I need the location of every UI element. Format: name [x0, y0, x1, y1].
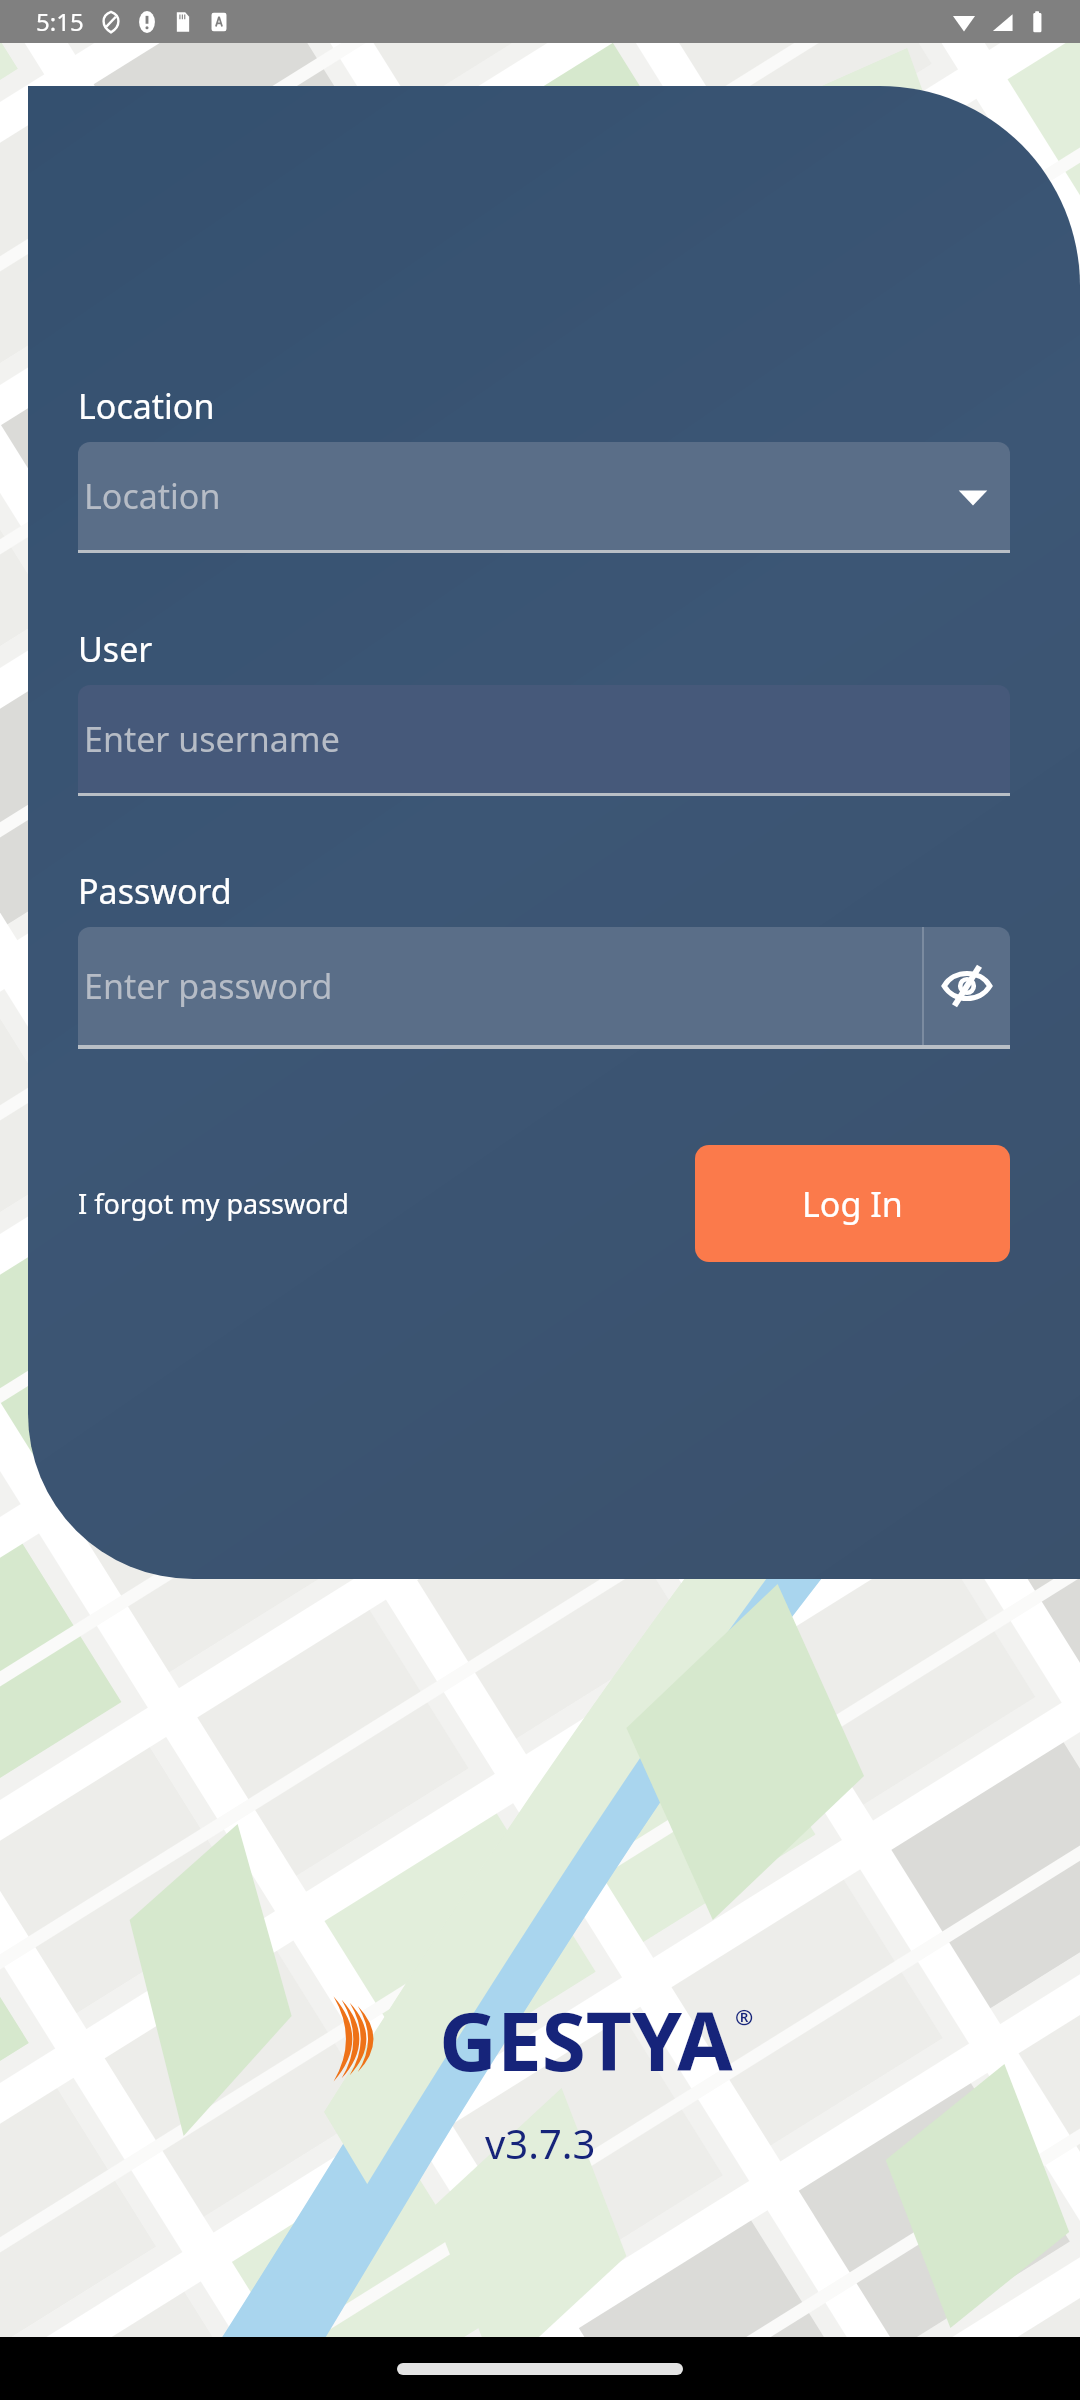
other: Open location list [956, 479, 990, 513]
staticText: v3.7.3 [485, 2116, 596, 2170]
staticText: 5:15 [36, 5, 84, 38]
button[interactable]: Show password [924, 927, 1010, 1045]
staticText: User [78, 626, 153, 672]
staticText: Location [78, 383, 215, 429]
button[interactable]: Enter username [78, 685, 1010, 796]
button[interactable]: Log In [695, 1145, 1010, 1262]
staticText: Enter password [84, 963, 333, 1009]
staticText: Log In [802, 1181, 903, 1227]
staticText: Location [84, 473, 221, 519]
staticText: I forgot my password [78, 1185, 349, 1222]
staticText: Password [78, 868, 232, 914]
staticText: ® [735, 2001, 754, 2031]
staticText: Enter username [84, 716, 340, 762]
button[interactable]: Location [78, 442, 1010, 553]
button[interactable]: I forgot my password [78, 1177, 349, 1230]
staticText: GESTYA [439, 1985, 733, 2094]
button[interactable]: Enter password [78, 927, 922, 1045]
